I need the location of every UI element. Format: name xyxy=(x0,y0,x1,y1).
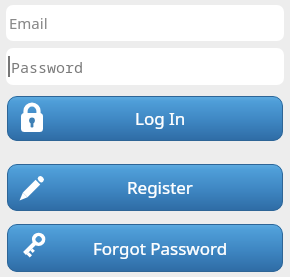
staticText: Log In xyxy=(135,107,186,130)
staticText: Email xyxy=(9,13,48,33)
staticText: Forgot Password xyxy=(93,237,228,260)
button[interactable]: Forgot Password xyxy=(7,224,283,272)
button[interactable]: Log In xyxy=(7,96,283,141)
button[interactable]: Register xyxy=(7,164,283,211)
staticText: Register xyxy=(127,176,193,199)
button[interactable]: Password xyxy=(6,48,284,85)
button[interactable]: Email xyxy=(6,5,284,41)
staticText: Password xyxy=(11,57,84,77)
